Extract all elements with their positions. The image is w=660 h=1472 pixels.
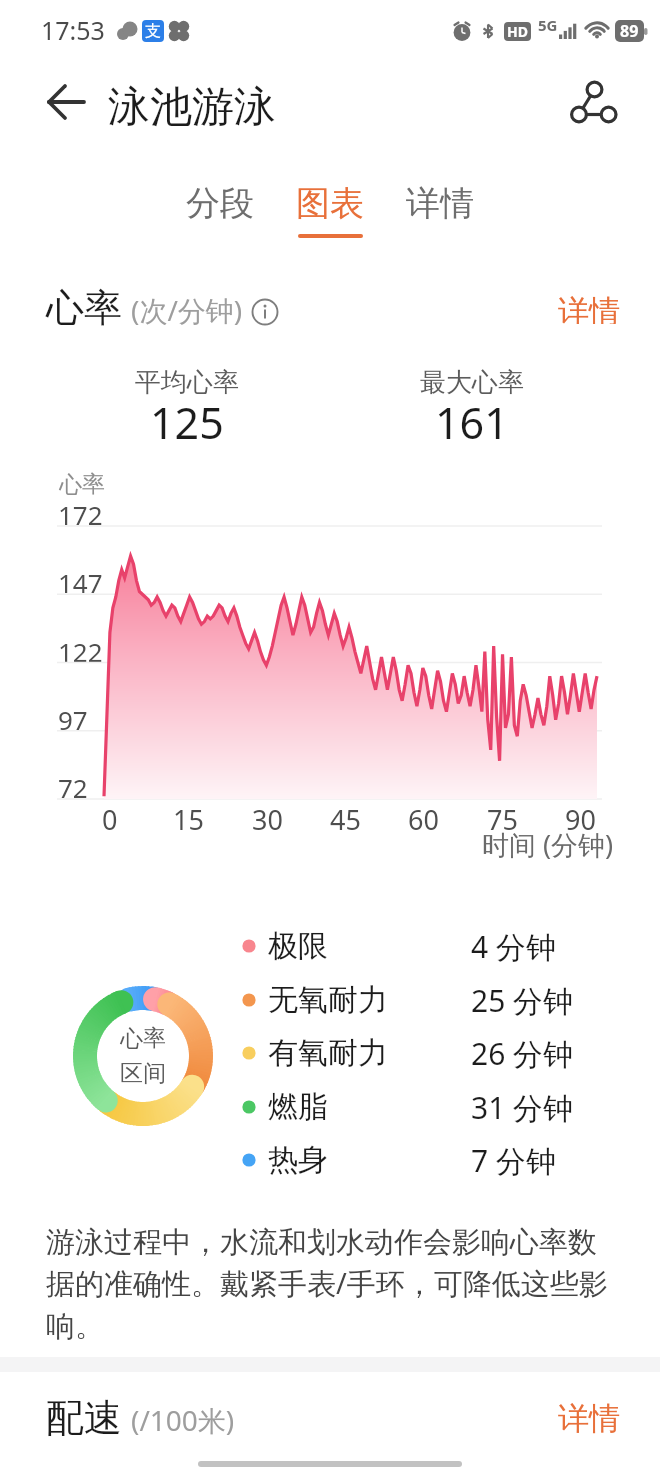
button[interactable]: Info xyxy=(251,298,279,326)
staticText: 配速 xyxy=(46,1394,122,1442)
staticText: 最大心率 xyxy=(420,366,524,399)
staticText: 心率 xyxy=(59,470,105,499)
staticText: 分段 xyxy=(186,182,254,225)
staticText: 72 xyxy=(58,770,88,805)
staticText: 122 xyxy=(58,634,103,669)
staticText: 26 分钟 xyxy=(471,1033,574,1074)
button[interactable]: 无氧耐力 xyxy=(0,974,660,1026)
staticText: 泳池游泳 xyxy=(108,81,276,134)
button[interactable]: Share xyxy=(565,75,629,139)
staticText: (/100米) xyxy=(131,1401,235,1439)
button[interactable]: 燃脂 xyxy=(0,1081,660,1133)
staticText: 详情 xyxy=(406,182,474,225)
staticText: 25 分钟 xyxy=(471,980,574,1021)
button[interactable]: Back xyxy=(29,77,89,137)
staticText: 147 xyxy=(58,565,103,600)
button[interactable]: 极限 xyxy=(0,920,660,972)
staticText: 15 xyxy=(173,801,204,838)
staticText: HD xyxy=(507,22,528,41)
staticText: 有氧耐力 xyxy=(268,1034,388,1072)
staticText: 热身 xyxy=(268,1141,328,1179)
button[interactable]: 配速 xyxy=(0,1380,660,1456)
staticText: 支 xyxy=(145,21,161,41)
staticText: 97 xyxy=(58,702,88,737)
staticText: 图表 xyxy=(296,182,364,225)
staticText: 心率 xyxy=(46,284,122,332)
staticText: 161 xyxy=(435,393,509,450)
staticText: 75 xyxy=(487,801,518,838)
staticText: 区间 xyxy=(120,1059,166,1088)
staticText: 详情 xyxy=(558,1399,620,1438)
button[interactable]: 分段 xyxy=(165,182,275,242)
staticText: 31 分钟 xyxy=(471,1087,574,1128)
staticText: 详情 xyxy=(558,292,620,324)
button[interactable]: 热身 xyxy=(0,1134,660,1186)
staticText: 心率 xyxy=(120,1024,166,1053)
staticText: 45 xyxy=(330,801,361,838)
button[interactable]: 有氧耐力 xyxy=(0,1027,660,1079)
staticText: (次/分钟) xyxy=(131,291,243,329)
button[interactable]: 详情 xyxy=(546,284,632,332)
button[interactable]: 图表 xyxy=(275,182,385,242)
staticText: 极限 xyxy=(268,927,328,965)
staticText: 游泳过程中，水流和划水动作会影响心率数据的准确性。戴紧手表/手环，可降低这些影响… xyxy=(46,1224,620,1344)
staticText: 5G xyxy=(538,15,558,35)
staticText: 7 分钟 xyxy=(471,1140,556,1181)
button[interactable]: 详情 xyxy=(385,182,495,242)
staticText: 无氧耐力 xyxy=(268,981,388,1019)
staticText: 平均心率 xyxy=(135,366,239,399)
staticText: 30 xyxy=(252,801,283,838)
staticText: 125 xyxy=(150,393,224,450)
staticText: 90 xyxy=(565,801,596,838)
staticText: 燃脂 xyxy=(268,1088,328,1126)
staticText: 172 xyxy=(58,497,103,532)
staticText: 0 xyxy=(102,801,118,838)
staticText: 时间 (分钟) xyxy=(482,826,614,863)
staticText: 4 分钟 xyxy=(471,926,556,967)
staticText: 17:53 xyxy=(41,13,105,47)
staticText: 89 xyxy=(620,20,639,42)
staticText: 60 xyxy=(408,801,439,838)
